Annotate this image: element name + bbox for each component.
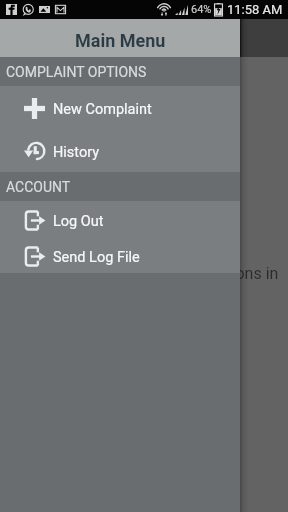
staticText: COMPLAINT OPTIONS [6, 64, 147, 80]
staticText: New Complaint [53, 101, 152, 118]
staticText: ACCOUNT [6, 179, 71, 195]
staticText: 64% [191, 3, 212, 16]
button[interactable]: Log Out [0, 201, 240, 237]
button[interactable]: History [0, 129, 240, 172]
staticText: 11:58 AM [227, 2, 283, 17]
staticText: Report any suggestions in [94, 264, 279, 283]
staticText: Send Log File [53, 249, 140, 266]
button[interactable]: Send Log File [0, 237, 240, 273]
staticText: History [53, 144, 100, 161]
button[interactable]: New Complaint [0, 86, 240, 129]
staticText: Log Out [53, 213, 104, 230]
staticText: Main Menu [75, 30, 166, 51]
